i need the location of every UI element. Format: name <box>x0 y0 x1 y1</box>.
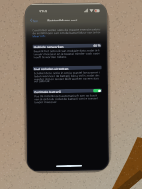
staticText: Batterijduur optimaliseren <box>47 18 77 21</box>
staticText: Schakel deze optie in om je toestel lang… <box>34 71 100 74</box>
other: Optimale batterij aan/uit <box>93 89 101 93</box>
staticText: 60 % <box>93 44 100 48</box>
staticText: Pas de instellingen automatisch aan op b… <box>34 94 98 97</box>
staticText: van je gebruik zodat de batterij van je … <box>34 97 98 100</box>
staticText: langer meegaat en je toestel minder vaak… <box>33 52 99 55</box>
staticText: Terug <box>32 18 38 22</box>
button[interactable]: Optimale batterij <box>33 88 102 93</box>
button[interactable]: Terug <box>30 17 38 22</box>
staticText: Snel opladen uitzetten <box>34 67 69 70</box>
staticText: Controleer welke apps de meeste energie … <box>32 28 100 31</box>
staticText: minder slijt en langer blijft werken op … <box>34 77 99 80</box>
staticText: langer meegaat. <box>34 100 58 103</box>
button[interactable]: Snel opladen uitzetten <box>33 65 102 70</box>
staticText: hoeft te worden tijdens <box>34 55 67 58</box>
staticText: de instellingen aan om de batterijduur v… <box>32 31 100 34</box>
staticText: Optimale batterij <box>34 90 61 93</box>
button[interactable]: Mobiele netwerken <box>32 43 101 48</box>
staticText: vol gebruik. <box>34 79 51 82</box>
staticText: 17:38 <box>39 9 47 12</box>
staticText: Mobiele netwerken <box>33 45 64 48</box>
staticText: Meer info <box>32 34 45 37</box>
staticText: laden wanneer de batterij bijna vol is z… <box>34 74 100 77</box>
staticText: Beperk het gebruik van mobiele data zoda… <box>33 49 99 52</box>
